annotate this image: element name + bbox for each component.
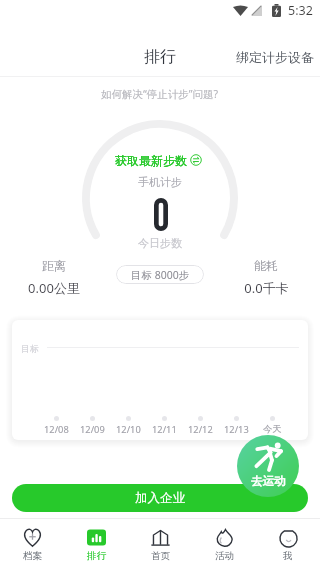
staticText: 获取最新步数 <box>115 153 187 168</box>
staticText: 排行 <box>87 550 106 562</box>
button[interactable]: 绑定计步设备 <box>230 40 319 74</box>
staticText: 12/08 <box>44 423 69 436</box>
button[interactable]: 首页 <box>128 519 192 569</box>
staticText: 活动 <box>215 550 234 562</box>
button[interactable]: 获取最新步数 <box>115 150 210 170</box>
staticText: 绑定计步设备 <box>236 49 314 65</box>
staticText: 目标 8000步 <box>131 268 190 282</box>
button[interactable]: 我 <box>256 519 320 569</box>
staticText: 12/10 <box>116 423 141 436</box>
button[interactable]: 活动 <box>192 519 256 569</box>
staticText: 排行 <box>144 47 176 67</box>
staticText: 今日步数 <box>138 236 182 250</box>
staticText: 去运动 <box>251 474 286 488</box>
staticText: 能耗 <box>254 258 278 273</box>
staticText: 12/12 <box>188 423 213 436</box>
staticText: 目标 <box>21 343 39 354</box>
button[interactable]: 排行 <box>64 519 128 569</box>
staticText: 0.0千卡 <box>244 279 289 297</box>
button[interactable]: 目标 8000步 <box>116 265 204 284</box>
button[interactable]: 如何解决“停止计步”问题? <box>60 82 260 106</box>
staticText: 5:32 <box>288 2 313 19</box>
staticText: 获取最新步数 <box>115 153 187 168</box>
button[interactable]: 去运动 <box>237 435 299 497</box>
staticText: 档案 <box>23 550 42 562</box>
staticText: 12/11 <box>152 423 177 436</box>
staticText: 首页 <box>151 550 170 562</box>
staticText: 加入企业 <box>135 490 185 506</box>
staticText: 12/09 <box>80 423 105 436</box>
staticText: 手机计步 <box>138 175 182 189</box>
staticText: 0.00公里 <box>28 279 80 297</box>
button[interactable]: 档案 <box>0 519 64 569</box>
staticText: 距离 <box>42 258 66 273</box>
staticText: 如何解决“停止计步”问题? <box>101 87 219 101</box>
staticText: 12/13 <box>224 423 249 436</box>
button[interactable]: 加入企业 <box>12 484 308 512</box>
staticText: 我 <box>283 550 293 562</box>
staticText: 今天 <box>263 423 282 435</box>
